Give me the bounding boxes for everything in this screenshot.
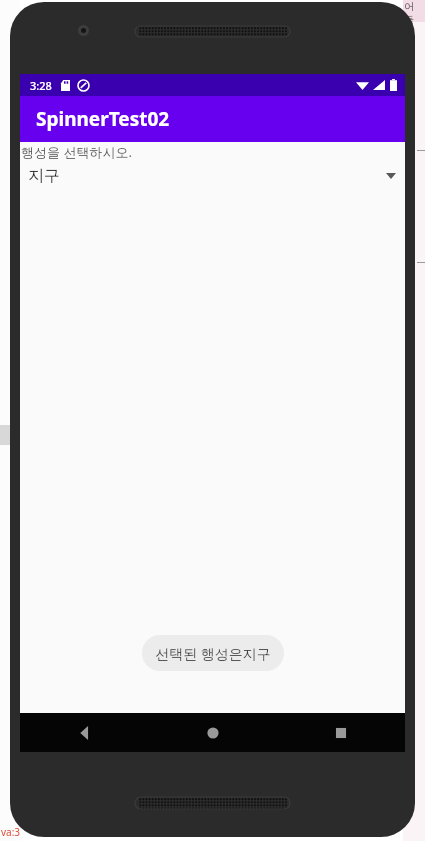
button[interactable]: 선택된 행성은지구 (142, 635, 284, 671)
staticText: 지구 (28, 166, 60, 186)
button[interactable]: 행성 선택 드롭다운 (20, 161, 405, 191)
button[interactable]: Back (20, 713, 149, 752)
staticText: SpinnerTest02 (36, 106, 170, 132)
staticText: va:3 (1, 825, 21, 839)
button[interactable]: Recent apps (277, 713, 405, 752)
staticText: 선택된 행성은지구 (155, 644, 271, 663)
staticText: 어 들 (404, 0, 414, 26)
button[interactable]: Home (149, 713, 277, 752)
staticText: 행성을 선택하시오. (21, 143, 132, 161)
staticText: 3:28 (30, 78, 52, 93)
